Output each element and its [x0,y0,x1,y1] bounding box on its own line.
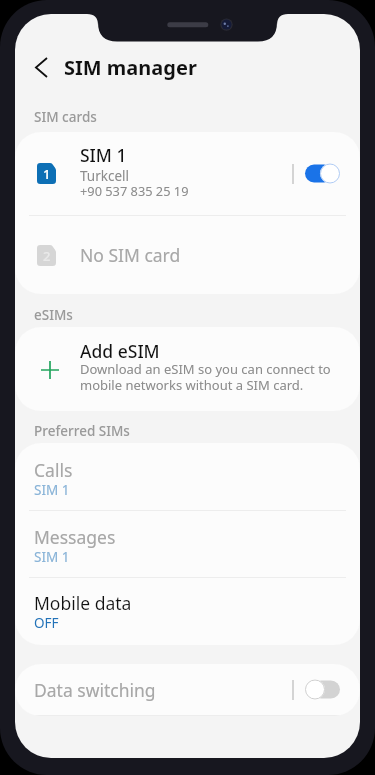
staticText: Turkcell [80,167,130,185]
button[interactable]: Add eSIM [15,327,360,411]
button[interactable]: Toggle on [305,163,340,184]
staticText: +90 537 835 25 19 [80,182,189,199]
button[interactable]: Messages [15,511,360,577]
staticText: SIM manager [64,54,197,81]
staticText: No SIM card [80,243,181,267]
staticText: Messages [34,525,116,549]
staticText: SIM 1 [80,143,127,167]
staticText: eSIMs [34,306,73,324]
staticText: Mobile data [34,591,132,615]
staticText: 1 [43,165,51,183]
button[interactable]: Calls [15,443,360,510]
button[interactable]: 2 [15,216,360,294]
button[interactable]: Mobile data [15,578,360,645]
staticText: SIM 1 [34,548,70,566]
staticText: SIM cards [34,108,97,126]
button[interactable]: Back [24,50,58,84]
staticText: Preferred SIMs [34,422,130,440]
staticText: OFF [34,614,59,632]
button[interactable]: Toggle off [305,679,340,700]
button[interactable]: Data switching [15,664,360,715]
staticText: Download an eSIM so you can connect to m… [80,360,346,393]
staticText: SIM 1 [34,481,70,499]
staticText: Data switching [34,678,292,702]
staticText: 2 [43,247,51,265]
staticText: Add eSIM [80,339,160,363]
button[interactable]: 1 [15,132,360,215]
staticText: Calls [34,458,73,482]
